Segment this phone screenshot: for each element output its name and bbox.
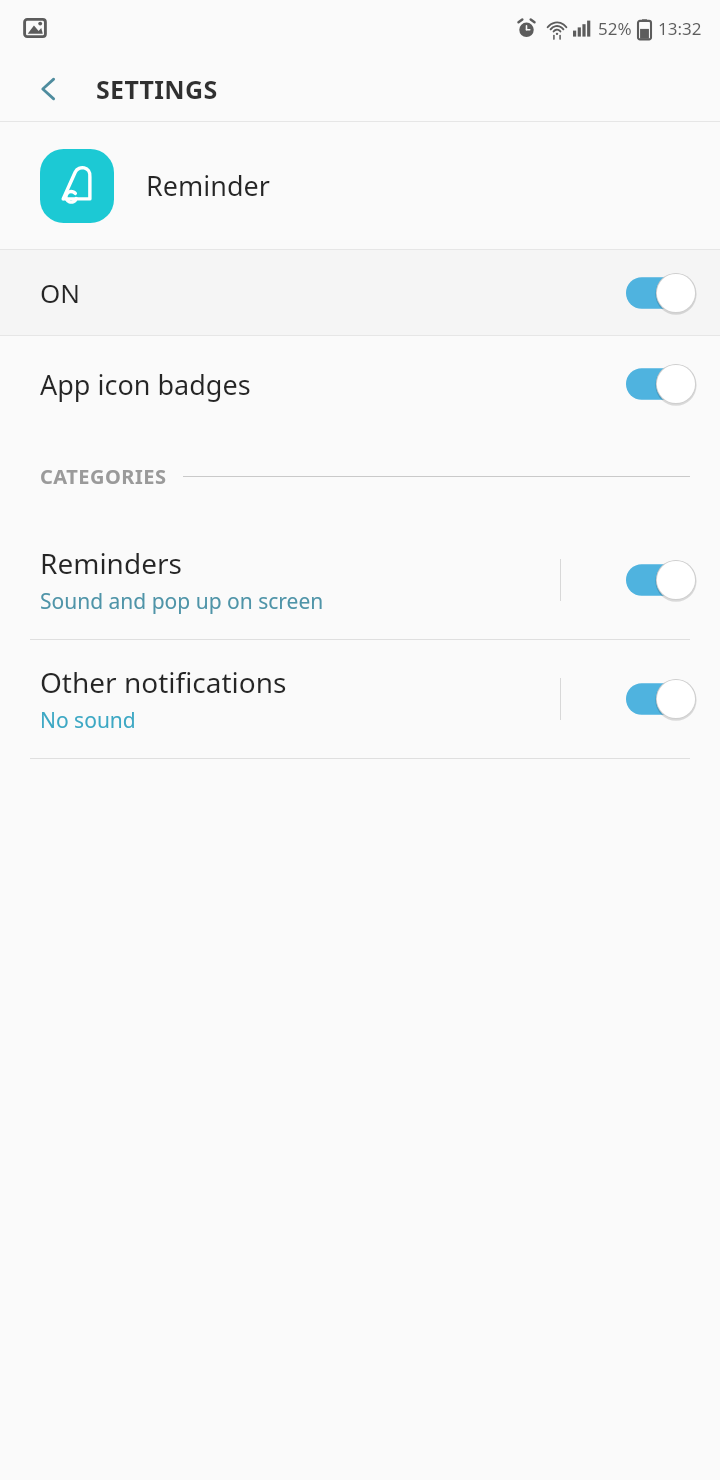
button[interactable]: Reminders <box>0 521 720 639</box>
staticText: App icon badges <box>40 366 251 403</box>
button[interactable]: ON <box>0 250 720 335</box>
button[interactable]: Back <box>18 58 80 120</box>
staticText: SETTINGS <box>96 72 218 106</box>
staticText: 52% <box>598 17 632 40</box>
button[interactable]: App icon badges <box>0 336 720 432</box>
staticText: ON <box>40 275 81 310</box>
button[interactable]: Reminder <box>0 122 720 249</box>
staticText: Sound and pop up on screen <box>40 587 324 616</box>
staticText: Reminder <box>146 167 270 204</box>
staticText: 13:32 <box>658 17 702 40</box>
button[interactable]: Toggle on <box>626 271 692 315</box>
staticText: No sound <box>40 706 136 735</box>
button[interactable]: Other notifications <box>0 640 720 758</box>
staticText: Other notifications <box>40 663 287 701</box>
staticText: CATEGORIES <box>40 463 167 490</box>
button[interactable]: Toggle on <box>626 677 692 721</box>
button[interactable]: Toggle on <box>626 362 692 406</box>
staticText: Reminders <box>40 544 182 582</box>
button[interactable]: Toggle on <box>626 558 692 602</box>
